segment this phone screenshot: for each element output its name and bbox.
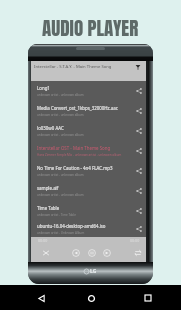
- button[interactable]: Share: [134, 224, 144, 234]
- button[interactable]: Interstellar OST - Main Theme Song S.T.A…: [31, 141, 146, 161]
- button[interactable]: Next: [101, 247, 112, 258]
- staticText: Hans Zimmer Simple Mix - unknown artist …: [37, 153, 122, 157]
- button[interactable]: Share: [134, 106, 144, 116]
- button[interactable]: sample.aif: [31, 181, 146, 201]
- staticText: unknown artist - Unknown Album: [37, 231, 85, 235]
- button[interactable]: Media Convert_ost_1kbps_32000Hz.aac: [31, 101, 146, 121]
- staticText: AUDIO PLAYER: [42, 14, 139, 43]
- staticText: Interstellar - S.T.A.Y. - Main Theme Son…: [34, 64, 112, 70]
- staticText: unknown artist - Time Table: [37, 213, 76, 217]
- staticText: ubuntu-16.04-desktop-amd64.iso: [37, 223, 106, 229]
- staticText: sample.aif: [37, 185, 59, 191]
- button[interactable]: Share: [134, 166, 144, 176]
- staticText: No Time For Caution - 4n4 FLAC.mp3: [37, 165, 113, 171]
- button[interactable]: Share: [134, 206, 144, 216]
- button[interactable]: Home: [84, 291, 98, 305]
- button[interactable]: Interstellar - S.T.A.Y. - Main Theme Son…: [31, 61, 146, 81]
- staticText: 00:00: [38, 238, 48, 243]
- staticText: unknown artist - unknown album: [37, 113, 84, 117]
- staticText: unknown artist - unknown album: [37, 93, 84, 97]
- button[interactable]: No Time For Caution - 4n4 FLAC.mp3: [31, 161, 146, 181]
- button[interactable]: Now playing: [134, 63, 142, 71]
- button[interactable]: Repeat: [132, 247, 143, 258]
- button[interactable]: Shuffle: [40, 247, 51, 258]
- staticText: Time Table: [37, 205, 60, 211]
- button[interactable]: Long1: [31, 81, 146, 101]
- staticText: Media Convert_ost_1kbps_32000Hz.aac: [37, 105, 118, 111]
- staticText: Interstellar OST - Main Theme Song S.T.A…: [37, 145, 134, 151]
- staticText: 00:00: [130, 238, 140, 243]
- button[interactable]: Previous: [70, 247, 81, 258]
- staticText: LG: [90, 268, 97, 275]
- button[interactable]: ubuntu-16.04-desktop-amd64.iso: [31, 221, 146, 237]
- staticText: Long1: [37, 85, 50, 91]
- button[interactable]: Time Table: [31, 201, 146, 221]
- button[interactable]: lo030w0 AAC: [31, 121, 146, 141]
- button[interactable]: Back: [34, 291, 48, 305]
- staticText: unknown artist - unknown album: [37, 193, 84, 197]
- staticText: unknown artist - unknown album: [37, 173, 84, 177]
- button[interactable]: Share: [134, 146, 144, 156]
- button[interactable]: Share: [134, 126, 144, 136]
- staticText: lo030w0 AAC: [37, 125, 64, 131]
- button[interactable]: Play: [86, 247, 97, 258]
- staticText: unknown artist - unknown album: [37, 133, 84, 137]
- button[interactable]: Share: [134, 186, 144, 196]
- button[interactable]: Share: [134, 86, 144, 96]
- button[interactable]: Recents: [141, 291, 155, 305]
